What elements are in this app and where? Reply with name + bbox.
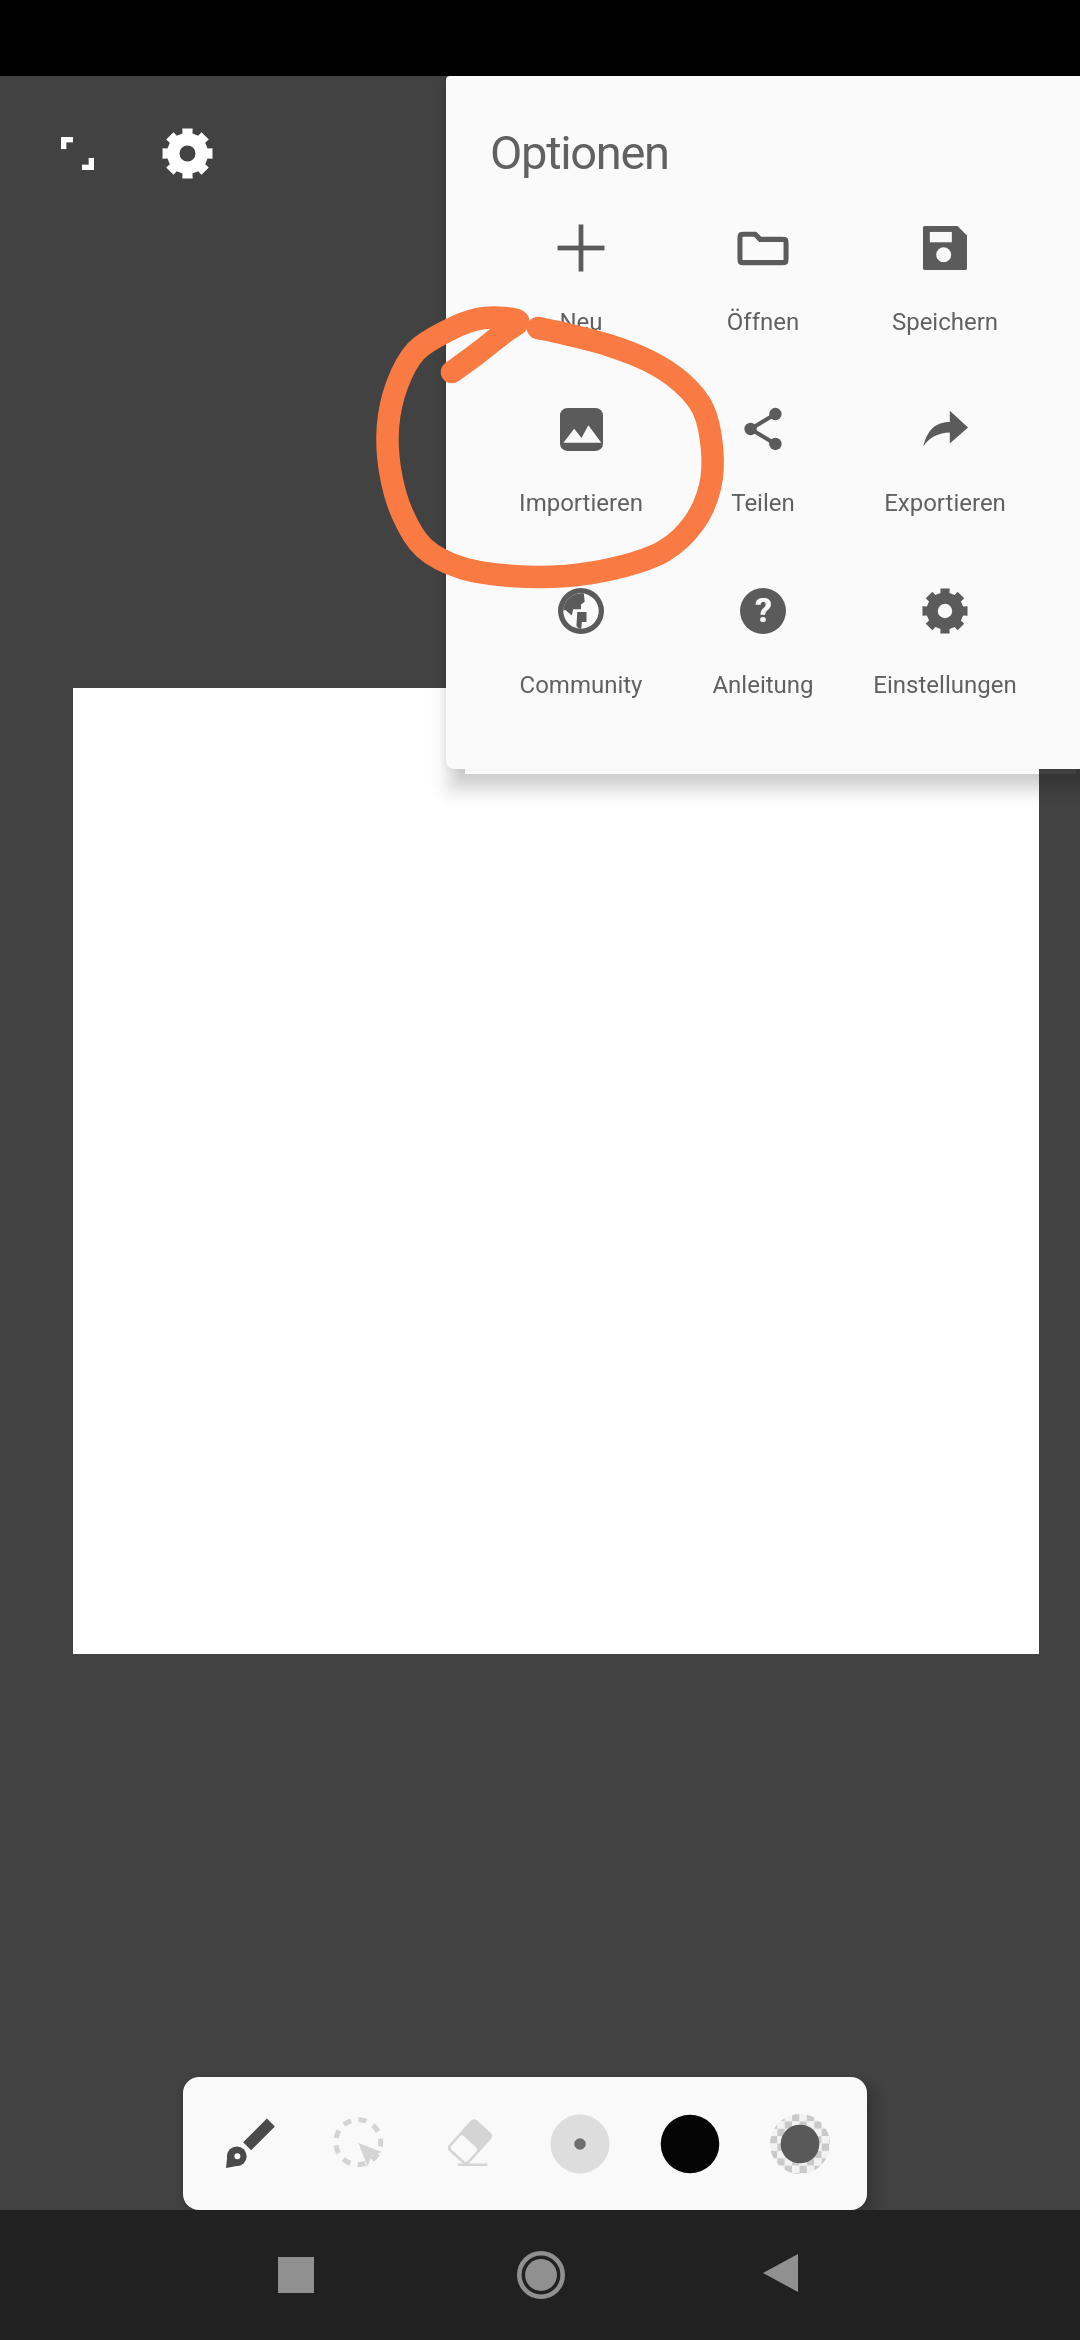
staticText: Optionen (490, 125, 669, 180)
button[interactable]: Einstellungen (854, 549, 1036, 701)
button[interactable]: Exportieren (854, 367, 1036, 519)
button[interactable]: Community (490, 549, 672, 701)
button[interactable]: Select (305, 2077, 415, 2210)
button[interactable]: ? (672, 549, 854, 701)
staticText: Neu (490, 308, 672, 336)
button[interactable]: Eraser (415, 2077, 525, 2210)
button[interactable]: Home (491, 2210, 591, 2340)
button[interactable]: Back (730, 2210, 830, 2340)
staticText: ? (755, 590, 772, 630)
button[interactable]: Teilen (672, 367, 854, 519)
staticText: Anleitung (672, 671, 854, 699)
staticText: Einstellungen (854, 671, 1036, 699)
button[interactable]: Fit canvas (30, 106, 124, 200)
button[interactable]: Neu (490, 186, 672, 338)
staticText: Öffnen (672, 308, 854, 336)
button[interactable]: Speichern (854, 186, 1036, 338)
button[interactable]: Brush size (525, 2077, 635, 2210)
staticText: Importieren (490, 489, 672, 517)
button[interactable]: Importieren (490, 367, 672, 519)
staticText: Speichern (854, 308, 1036, 336)
button[interactable]: Recent apps (246, 2210, 346, 2340)
staticText: Exportieren (854, 489, 1036, 517)
button[interactable]: Öffnen (672, 186, 854, 338)
button[interactable]: Settings (140, 106, 234, 200)
staticText: Teilen (672, 489, 854, 517)
button[interactable]: Opacity (745, 2077, 855, 2210)
button[interactable]: Brush (195, 2077, 305, 2210)
button[interactable]: Colour (635, 2077, 745, 2210)
staticText: Community (490, 671, 672, 699)
